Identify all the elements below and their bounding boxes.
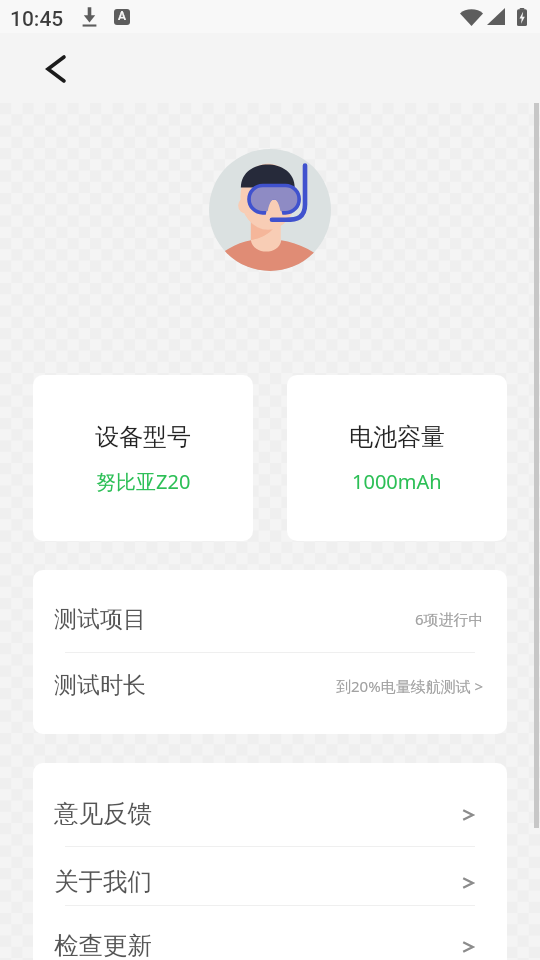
staticText: 努比亚Z20 (96, 468, 191, 495)
staticText: 6项进行中 (415, 609, 484, 629)
button[interactable]: 设备型号 (33, 375, 253, 541)
staticText: 电池容量 (349, 422, 445, 452)
staticText: 检查更新 (54, 930, 152, 960)
staticText: 测试时长 (54, 671, 146, 700)
staticText: 意见反馈 (54, 798, 152, 829)
button[interactable]: Back (30, 43, 82, 95)
staticText: A (118, 9, 126, 23)
staticText: 关于我们 (54, 866, 152, 897)
button[interactable]: 关于我们 (33, 852, 507, 910)
staticText: 到20%电量续航测试 > (336, 676, 484, 696)
staticText: 设备型号 (95, 422, 191, 452)
button[interactable]: 测试时长 (33, 653, 507, 718)
staticText: 测试项目 (54, 605, 146, 634)
button[interactable]: 检查更新 (33, 915, 507, 960)
button[interactable]: 电池容量 (287, 375, 507, 541)
staticText: 10:45 (10, 7, 64, 32)
button[interactable]: 意见反馈 (33, 780, 507, 846)
staticText: 1000mAh (352, 468, 442, 495)
button[interactable]: 测试项目 (33, 586, 507, 652)
